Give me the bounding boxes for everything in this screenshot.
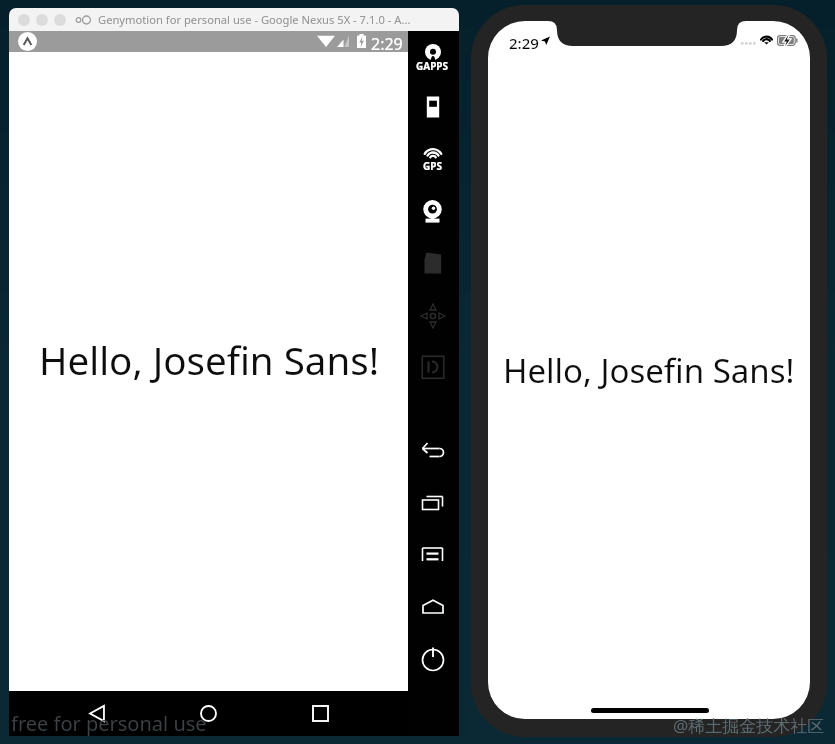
button[interactable] [54,14,66,26]
button[interactable]: Accelerometer [408,304,457,330]
button[interactable]: Phone [408,95,457,121]
staticText: 2:29 [371,33,403,54]
button[interactable]: Back [408,439,457,465]
staticText: GPS [423,159,442,173]
button[interactable]: Recent apps [408,491,457,517]
button[interactable]: Screen recorder [408,248,457,274]
staticText: @稀土掘金技术社区 [673,714,825,737]
button[interactable]: Identifiers [408,355,457,381]
staticText: Genymotion for personal use - Google Nex… [98,12,411,27]
button[interactable]: Power [408,647,457,673]
button[interactable]: Recent apps [293,691,347,736]
button[interactable] [36,14,48,26]
staticText: Hello, Josefin Sans! [39,334,379,386]
button[interactable]: Back [70,691,124,736]
button[interactable] [18,14,30,26]
button[interactable]: Home [408,595,457,621]
staticText: free for personal use [11,710,207,737]
button[interactable]: Google apps [408,40,457,78]
staticText: GAPPS [416,59,449,73]
staticText: 2:29 [509,33,539,53]
button[interactable]: Camera [408,200,457,226]
button[interactable]: GPS [408,142,457,180]
button[interactable]: Home [181,691,235,736]
staticText: Hello, Josefin Sans! [503,348,795,393]
button[interactable]: Menu [408,543,457,569]
